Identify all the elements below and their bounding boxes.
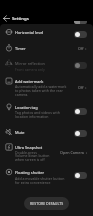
staticText: camera. [15, 92, 29, 97]
staticText: location information [15, 114, 49, 119]
staticText: Off › [78, 85, 87, 90]
button[interactable]: Mirror reflection [0, 56, 93, 73]
staticText: Floating shutter [15, 170, 45, 175]
button[interactable] [74, 172, 87, 179]
staticText: RESTORE DEFAULTS [30, 201, 64, 206]
button[interactable]: Horizontal level [0, 25, 93, 40]
staticText: Settings [12, 15, 29, 21]
button[interactable] [74, 62, 87, 69]
staticText: Ultra Snapshot [15, 145, 43, 150]
button[interactable]: Settings [0, 12, 93, 24]
button[interactable]: Location tag [0, 100, 93, 120]
button[interactable]: Floating shutter [0, 165, 93, 186]
button[interactable] [74, 130, 87, 137]
staticText: for extra convenience [15, 180, 51, 185]
staticText: to photos taken with the rear [15, 88, 63, 93]
staticText: Add a movable shutter button [15, 176, 65, 181]
button[interactable]: Mute [0, 125, 93, 140]
staticText: Mute [15, 130, 25, 135]
button[interactable] [74, 108, 87, 115]
button[interactable]: Timer [0, 40, 93, 55]
button[interactable]: Add watermark [0, 74, 93, 98]
staticText: Open Camera › [60, 150, 87, 155]
staticText: Volume down button [15, 153, 50, 158]
staticText: Mirror reflection [15, 61, 45, 66]
button[interactable]: Ultra Snapshot [0, 140, 93, 163]
staticText: when screen is off [15, 157, 45, 162]
staticText: Add watermark [15, 79, 44, 84]
button[interactable] [74, 31, 87, 38]
staticText: Double-press [15, 150, 37, 155]
staticText: Location tag [15, 105, 38, 110]
button[interactable]: RESTORE DEFAULTS [24, 197, 69, 210]
staticText: Automatically add a watermark [15, 84, 67, 89]
staticText: Timer [15, 46, 26, 51]
staticText: Off › [78, 46, 87, 51]
staticText: Horizontal level [15, 30, 44, 35]
staticText: Tag photos and videos with [15, 110, 60, 115]
staticText: Front camera only [15, 67, 45, 72]
